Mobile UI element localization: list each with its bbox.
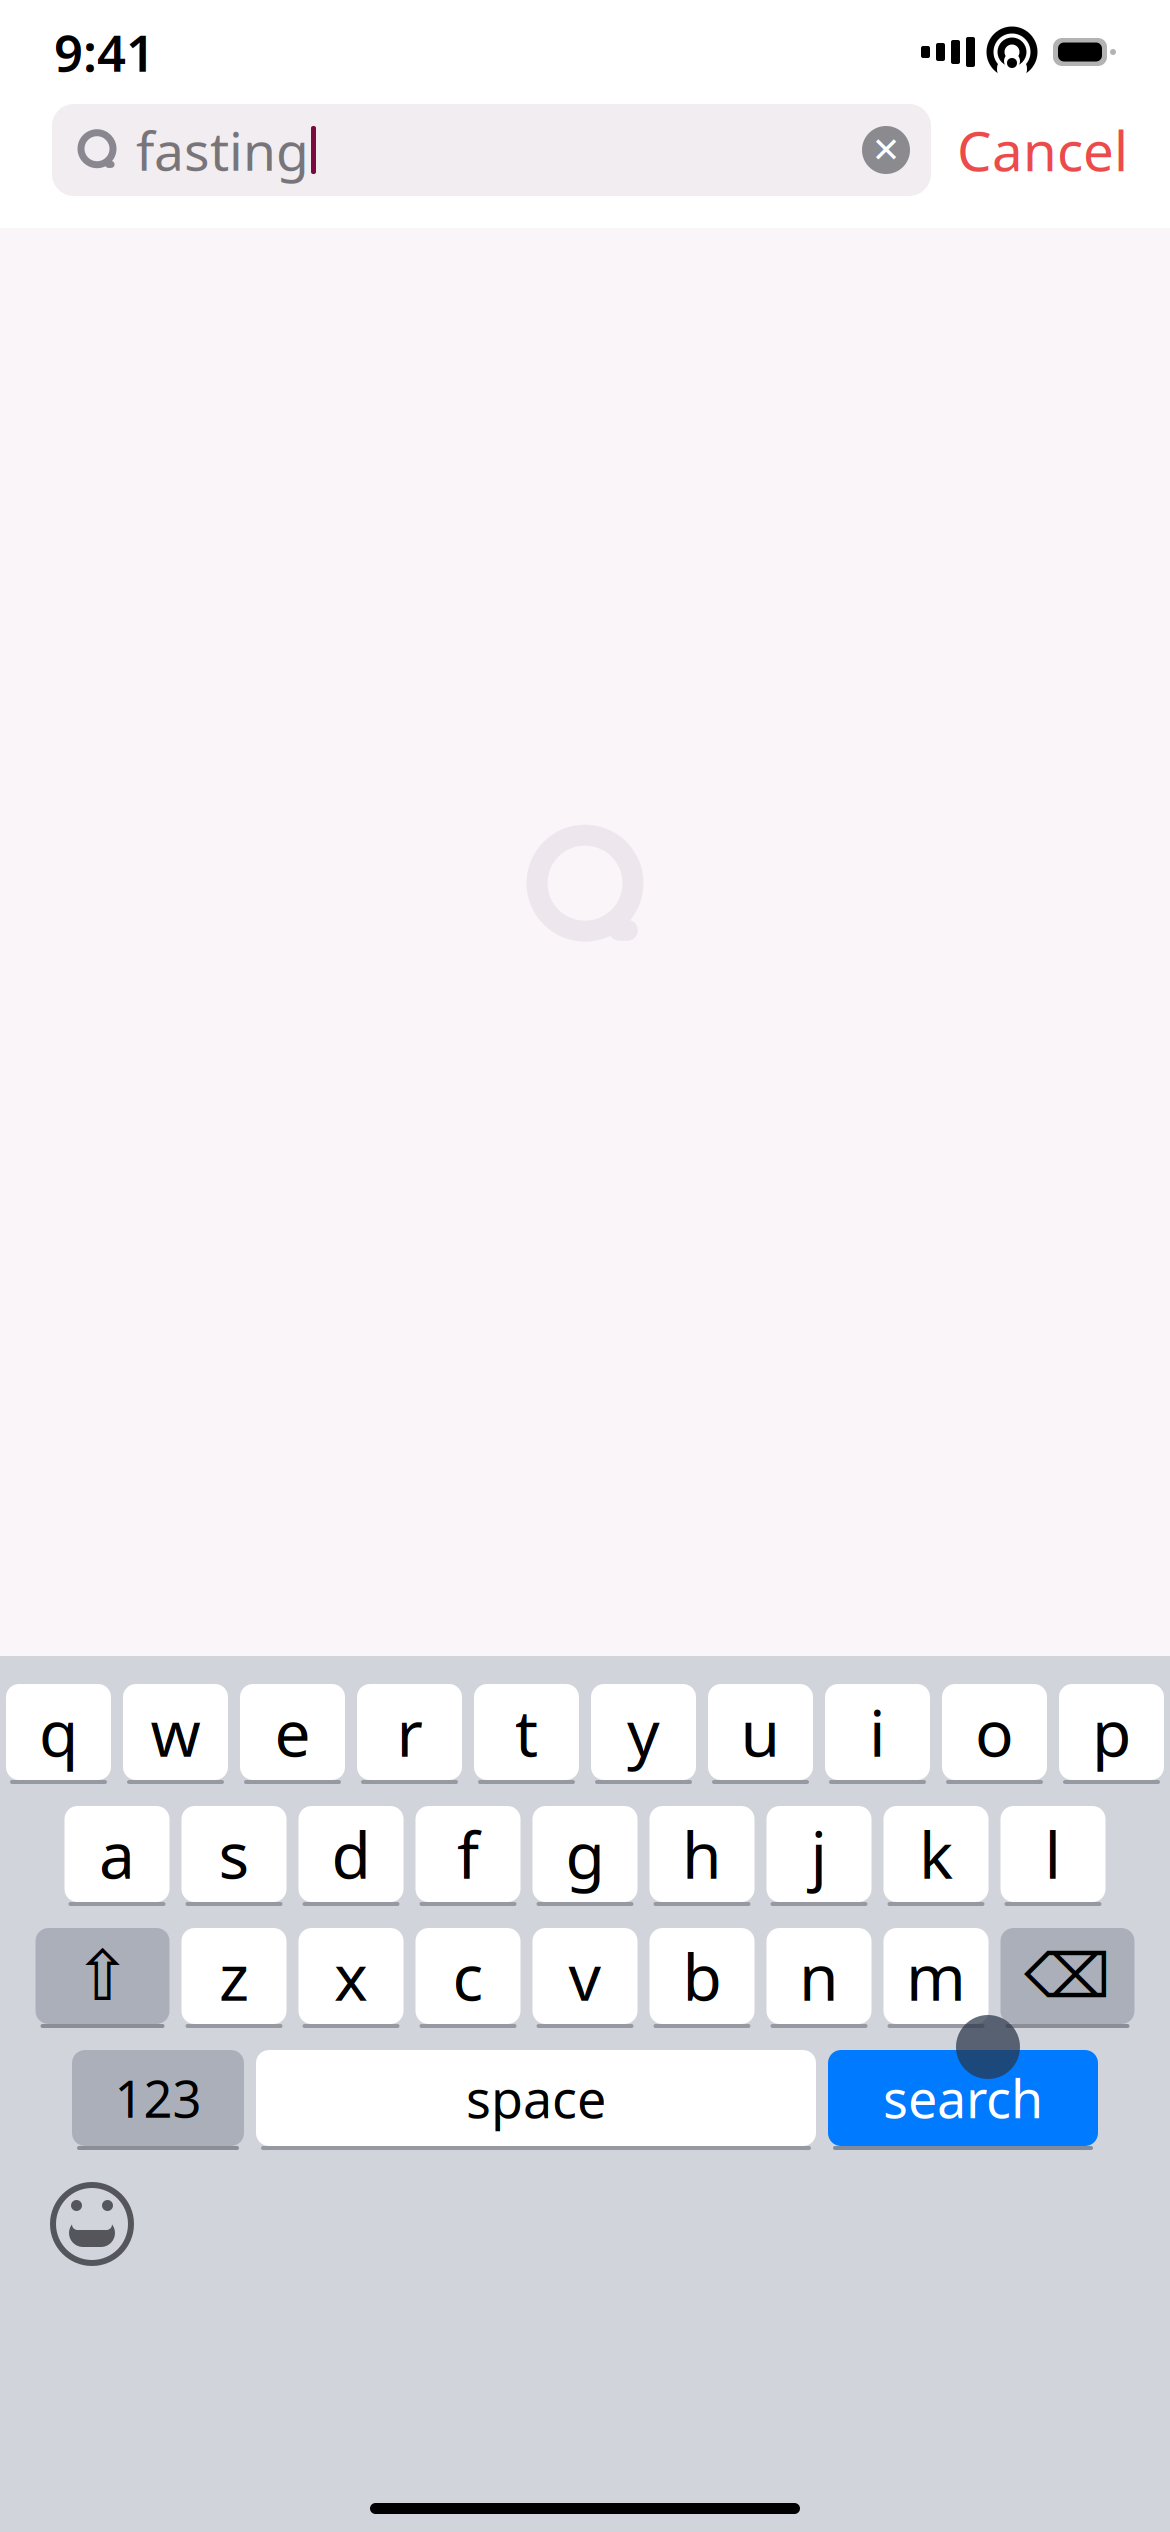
staticText: h <box>682 1811 722 1896</box>
staticText: ⇧ <box>73 1937 131 2015</box>
staticText: space <box>466 2063 606 2133</box>
staticText: q <box>39 1689 78 1774</box>
button[interactable]: b <box>649 1928 754 2028</box>
staticText: t <box>515 1689 538 1774</box>
staticText: f <box>457 1811 479 1896</box>
button[interactable]: r <box>357 1684 462 1784</box>
staticText: y <box>627 1689 660 1774</box>
button[interactable]: p <box>1059 1684 1164 1784</box>
button[interactable]: Delete <box>1000 1928 1134 2028</box>
staticText: m <box>906 1933 966 2018</box>
button[interactable]: t <box>474 1684 579 1784</box>
button[interactable]: q <box>6 1684 111 1784</box>
staticText: g <box>565 1811 604 1896</box>
staticText: e <box>274 1689 310 1774</box>
staticText: o <box>975 1689 1014 1774</box>
staticText: c <box>452 1933 483 2018</box>
button[interactable]: Emoji keyboard <box>44 2176 140 2272</box>
staticText: x <box>334 1933 368 2018</box>
button[interactable]: h <box>649 1806 754 1906</box>
staticText: z <box>219 1933 249 2018</box>
button[interactable]: k <box>883 1806 988 1906</box>
button[interactable]: u <box>708 1684 813 1784</box>
button[interactable]: d <box>298 1806 403 1906</box>
staticText: ✕ <box>871 130 900 170</box>
button[interactable]: y <box>591 1684 696 1784</box>
staticText: ⌫ <box>1024 1941 1111 2011</box>
staticText: k <box>919 1811 953 1896</box>
button[interactable]: Shift <box>35 1928 169 2028</box>
staticText: 9:41 <box>54 18 155 86</box>
staticText: s <box>218 1811 249 1896</box>
staticText: n <box>799 1933 839 2018</box>
staticText: search <box>883 2063 1043 2133</box>
staticText: r <box>396 1689 422 1774</box>
button[interactable]: w <box>123 1684 228 1784</box>
staticText: Cancel <box>957 114 1128 186</box>
staticText: a <box>99 1811 135 1896</box>
staticText: fasting <box>136 115 309 185</box>
button[interactable]: s <box>181 1806 286 1906</box>
button[interactable]: v <box>532 1928 637 2028</box>
staticText: d <box>331 1811 370 1896</box>
button[interactable]: o <box>942 1684 1047 1784</box>
button[interactable]: Numbers <box>72 2050 244 2150</box>
staticText: i <box>869 1689 886 1774</box>
button[interactable]: g <box>532 1806 637 1906</box>
button[interactable]: x <box>298 1928 403 2028</box>
button[interactable]: j <box>766 1806 871 1906</box>
button[interactable]: a <box>64 1806 169 1906</box>
button[interactable]: c <box>415 1928 520 2028</box>
button[interactable]: Cancel <box>931 104 1140 196</box>
staticText: b <box>682 1933 721 2018</box>
button[interactable]: space <box>256 2050 816 2150</box>
staticText: v <box>568 1933 601 2018</box>
button[interactable]: i <box>825 1684 930 1784</box>
staticText: 123 <box>114 2064 201 2132</box>
button[interactable]: Clear text <box>851 104 921 196</box>
button[interactable]: z <box>181 1928 286 2028</box>
button[interactable]: m <box>883 1928 988 2028</box>
button[interactable]: search <box>828 2050 1098 2150</box>
button[interactable]: e <box>240 1684 345 1784</box>
staticText: j <box>810 1811 827 1896</box>
staticText: w <box>150 1689 200 1774</box>
staticText: u <box>740 1689 780 1774</box>
button[interactable]: n <box>766 1928 871 2028</box>
staticText: l <box>1044 1811 1061 1896</box>
staticText: p <box>1092 1689 1131 1774</box>
button[interactable]: l <box>1000 1806 1105 1906</box>
button[interactable]: f <box>415 1806 520 1906</box>
